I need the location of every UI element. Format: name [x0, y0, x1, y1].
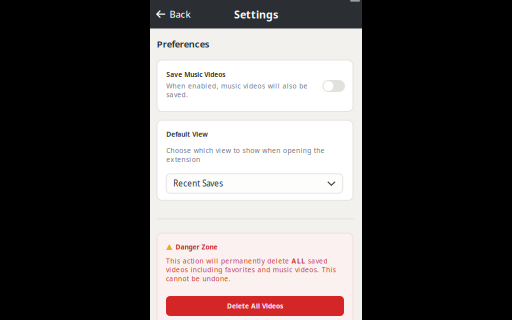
staticText: When enabled, music videos will also be …: [166, 81, 307, 99]
staticText: Delete All Videos: [227, 302, 283, 310]
button[interactable]: Back: [150, 0, 197, 28]
staticText: Settings: [234, 7, 278, 21]
button[interactable]: Save Music Videos toggle: [318, 68, 353, 96]
button[interactable]: Recent Saves: [166, 174, 343, 193]
staticText: This action will permanently delete ALL …: [166, 256, 336, 283]
staticText: Default View: [166, 130, 208, 139]
staticText: Save Music Videos: [166, 70, 225, 79]
staticText: Recent Saves: [173, 178, 223, 189]
staticText: Choose which view to show when opening t…: [166, 146, 324, 164]
staticText: Preferences: [157, 38, 210, 50]
button[interactable]: Delete All Videos: [166, 296, 344, 316]
staticText: Back: [169, 8, 190, 20]
staticText: Danger Zone: [176, 243, 218, 251]
